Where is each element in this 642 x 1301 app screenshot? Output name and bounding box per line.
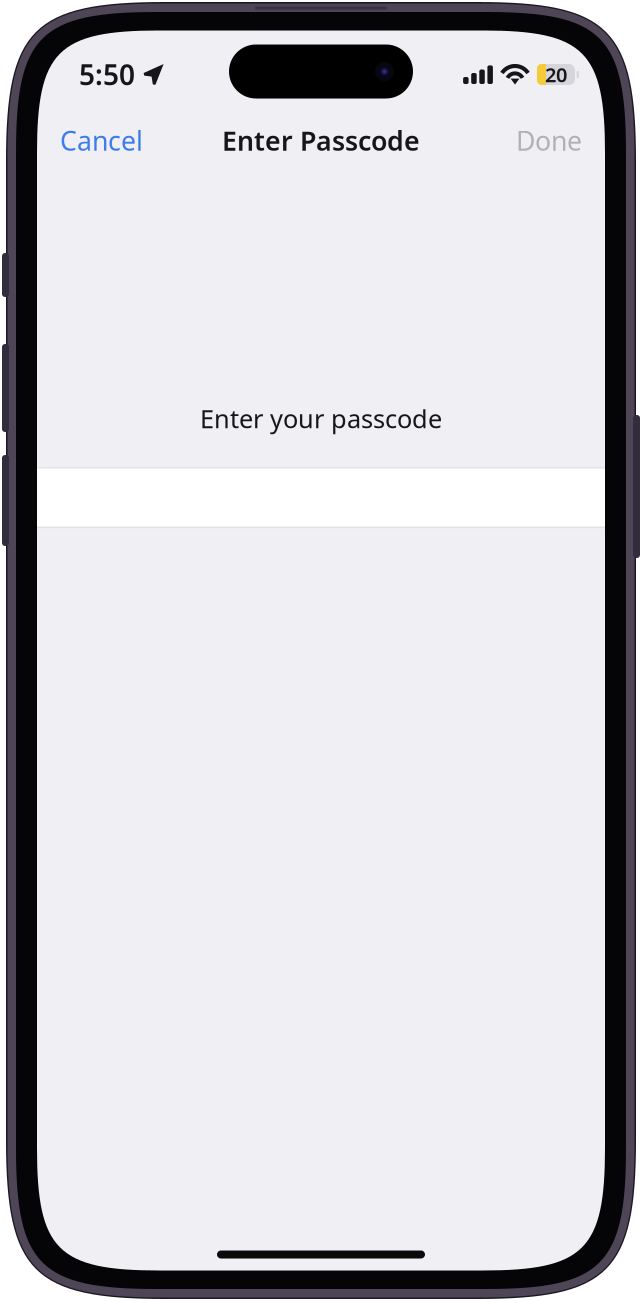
button[interactable]: Cancel <box>52 113 151 168</box>
staticText: Enter Passcode <box>222 123 420 158</box>
staticText: 5:50 <box>79 56 135 93</box>
button[interactable] <box>37 467 605 528</box>
staticText: Cancel <box>60 123 143 158</box>
staticText: Enter your passcode <box>200 401 442 435</box>
staticText: 20 <box>545 61 567 88</box>
button[interactable]: Done <box>508 113 590 168</box>
staticText: Done <box>516 123 582 158</box>
